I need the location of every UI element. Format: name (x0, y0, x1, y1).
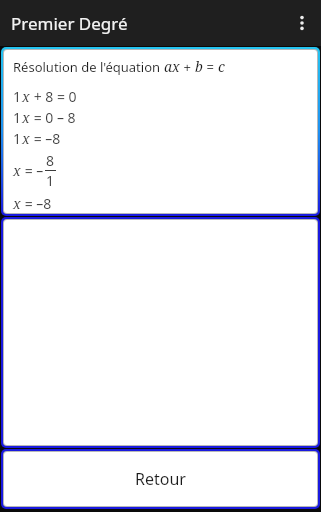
staticText: + 8 = 0 (30, 87, 77, 106)
staticText: = – (21, 161, 44, 180)
staticText: 1 (13, 108, 22, 127)
staticText: x (22, 108, 30, 127)
staticText: b (195, 57, 203, 76)
staticText: x (13, 194, 21, 213)
staticText: x (13, 161, 21, 180)
button[interactable]: Résolution de l'équation (4, 50, 317, 213)
button[interactable]: Retour (4, 452, 317, 506)
button[interactable]: More options (283, 0, 321, 46)
staticText: 1 (13, 129, 22, 148)
staticText: = –8 (30, 129, 61, 148)
staticText: ax (164, 57, 180, 76)
staticText: c (218, 57, 225, 76)
staticText: 1 (13, 87, 22, 106)
staticText: x (22, 129, 30, 148)
staticText: = (203, 58, 218, 76)
staticText: Résolution de l'équation (13, 58, 164, 76)
staticText: = 0 – 8 (30, 108, 76, 127)
staticText: + (180, 58, 195, 76)
staticText: = –8 (21, 194, 52, 213)
staticText: 8 (46, 151, 55, 170)
staticText: Retour (135, 468, 186, 490)
staticText: Premier Degré (11, 12, 128, 35)
staticText: 1 (46, 171, 55, 190)
staticText: x (22, 87, 30, 106)
